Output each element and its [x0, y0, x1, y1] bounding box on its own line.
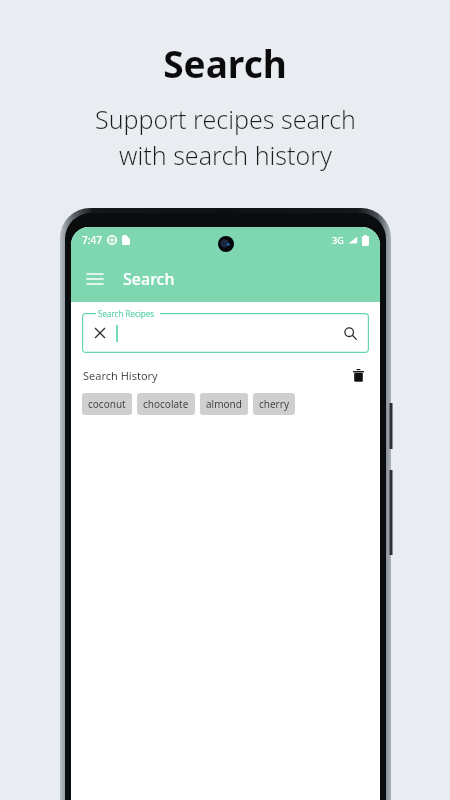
button[interactable]: Clear search text — [91, 324, 109, 342]
button[interactable]: Open navigation menu — [77, 261, 113, 297]
button[interactable]: cherry — [253, 393, 295, 415]
button[interactable]: Clear search text — [82, 313, 369, 353]
staticText: Search — [123, 268, 175, 290]
staticText: Support recipes search — [95, 102, 356, 136]
staticText: coconut — [88, 397, 126, 411]
button[interactable]: almond — [200, 393, 248, 415]
staticText: 7:47 — [82, 233, 102, 247]
button[interactable]: coconut — [82, 393, 132, 415]
staticText: cherry — [259, 397, 289, 411]
button[interactable]: chocolate — [137, 393, 195, 415]
staticText: with search history — [119, 138, 332, 172]
staticText: 3G — [332, 234, 344, 246]
staticText: almond — [206, 397, 242, 411]
staticText: Search — [163, 38, 287, 88]
button[interactable]: Search — [340, 323, 360, 343]
staticText: Search Recipes — [98, 308, 155, 319]
button[interactable]: Clear search history — [348, 365, 368, 385]
staticText: Search History — [83, 368, 158, 383]
staticText: chocolate — [143, 397, 189, 411]
